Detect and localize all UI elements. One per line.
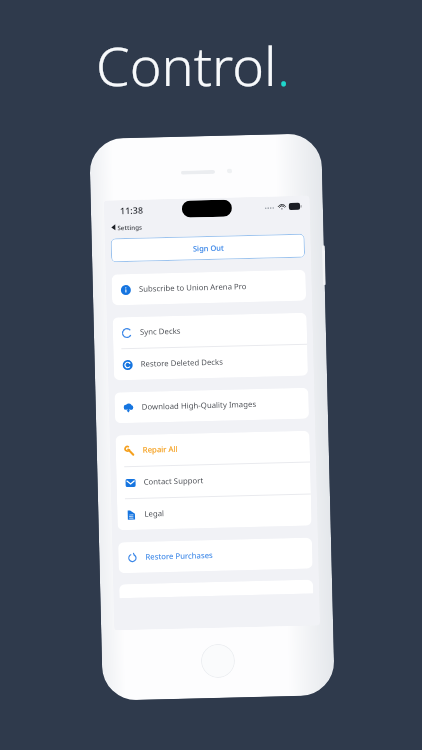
staticText: 11:38 [120, 204, 144, 216]
staticText: Legal [144, 508, 164, 520]
other: Download High-Quality Images [123, 402, 134, 413]
button[interactable]: Repair All [115, 431, 310, 466]
staticText: Control [96, 28, 277, 102]
staticText: . [277, 28, 291, 102]
button[interactable]: Download High-Quality Images [114, 388, 309, 423]
staticText: Sign Out [193, 243, 224, 253]
other: Sync Decks [122, 328, 132, 338]
button[interactable]: Settings [111, 223, 142, 231]
staticText: Sync Decks [140, 326, 181, 338]
staticText: Restore Deleted Decks [141, 357, 224, 370]
other: Contact Support [125, 478, 136, 488]
button[interactable] [119, 580, 313, 598]
staticText: Download High-Quality Images [142, 399, 257, 413]
staticText: Contact Support [143, 475, 204, 488]
button[interactable]: Restore Deleted Decks [113, 345, 308, 380]
staticText: Repair All [143, 444, 178, 456]
button[interactable]: Sync Decks [112, 313, 307, 348]
other: Legal [126, 510, 136, 520]
staticText: Settings [117, 223, 142, 231]
button[interactable]: Sign Out [111, 234, 305, 262]
staticText: Restore Purchases [145, 550, 213, 563]
other: Restore Deleted Decks [123, 360, 133, 370]
button[interactable]: Legal [117, 495, 312, 530]
other: Restore Purchases [127, 553, 137, 563]
other: Information [121, 285, 131, 295]
button[interactable]: Restore Purchases [118, 538, 313, 573]
staticText: Subscribe to Union Arena Pro [139, 281, 247, 295]
button[interactable]: Contact Support [116, 463, 311, 498]
other: Repair All [125, 446, 135, 456]
button[interactable]: Information [111, 270, 306, 305]
